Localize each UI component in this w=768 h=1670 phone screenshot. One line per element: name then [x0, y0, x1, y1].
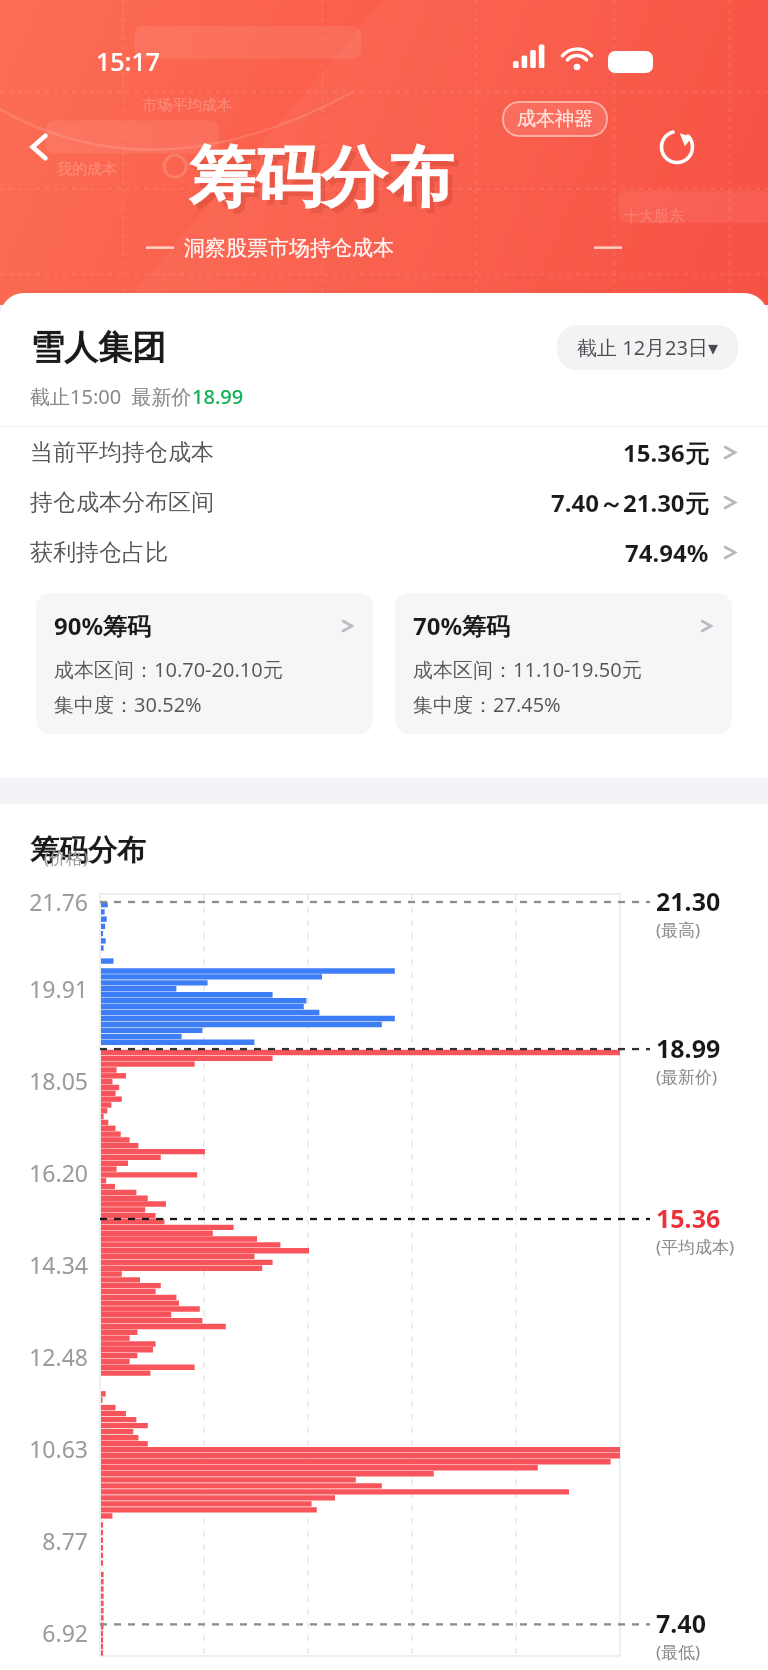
staticText: 截止15:00 最新价 [30, 383, 192, 410]
button[interactable]: 获利持仓占比 [0, 527, 768, 577]
staticText: 洞察股票市场持仓成本 [184, 235, 394, 261]
button[interactable]: 持仓成本分布区间 [0, 477, 768, 527]
staticText: 集中度：27.45% [413, 691, 561, 718]
staticText: 成本神器 [517, 107, 593, 131]
staticText: 我的成本 [57, 160, 117, 179]
staticText: 12.48 [0, 1341, 88, 1372]
button[interactable]: 70%筹码 [395, 593, 732, 734]
button[interactable]: Back [10, 118, 68, 176]
button[interactable]: 当前平均持仓成本 [0, 427, 768, 477]
staticText: 7.40 [656, 1606, 706, 1640]
button[interactable]: Refresh [646, 116, 708, 178]
staticText: (最新价) [656, 1065, 718, 1088]
staticText: 6.92 [0, 1617, 88, 1648]
button[interactable]: 截止 12月23日▾ [557, 325, 738, 370]
button[interactable]: 成本神器 [502, 101, 608, 137]
staticText: 市场平均成本 [142, 96, 232, 115]
staticText: 21.30 [656, 884, 721, 918]
staticText: 18.99 [192, 383, 244, 410]
staticText: 筹码分布 [30, 832, 146, 869]
staticText: 19.91 [0, 973, 88, 1004]
staticText: 截止 12月23日▾ [577, 334, 718, 361]
staticText: 成本区间：10.70-20.10元 [54, 656, 283, 683]
staticText: 90%筹码 [54, 609, 152, 642]
staticText: 获利持仓占比 [30, 538, 168, 567]
staticText: 15.36元 [623, 436, 709, 469]
staticText: (最低) [656, 1640, 701, 1663]
staticText: 雪人集团 [30, 326, 166, 369]
button[interactable]: 90%筹码 [36, 593, 373, 734]
staticText: 16.20 [0, 1157, 88, 1188]
staticText: 筹码分布 [194, 141, 458, 224]
staticText: 持仓成本分布区间 [30, 488, 214, 517]
staticText: (平均成本) [656, 1235, 735, 1258]
staticText: 15.36 [656, 1201, 721, 1235]
staticText: 成本区间：11.10-19.50元 [413, 656, 642, 683]
staticText: 8.77 [0, 1525, 88, 1556]
staticText: 7.40～21.30元 [551, 486, 709, 519]
staticText: 18.05 [0, 1065, 88, 1096]
staticText: 10.63 [0, 1433, 88, 1464]
staticText: 十大股东 [624, 207, 684, 226]
staticText: 14.34 [0, 1249, 88, 1280]
staticText: 74.94% [625, 536, 709, 569]
staticText: (最高) [656, 918, 701, 941]
staticText: 70%筹码 [413, 609, 511, 642]
staticText: 21.76 [0, 886, 88, 917]
staticText: (价格) [0, 846, 88, 869]
staticText: 当前平均持仓成本 [30, 438, 214, 467]
staticText: 18.99 [656, 1031, 721, 1065]
staticText: 集中度：30.52% [54, 691, 202, 718]
staticText: 筹码分布 [189, 136, 453, 219]
staticText: 15:17 [96, 44, 161, 78]
